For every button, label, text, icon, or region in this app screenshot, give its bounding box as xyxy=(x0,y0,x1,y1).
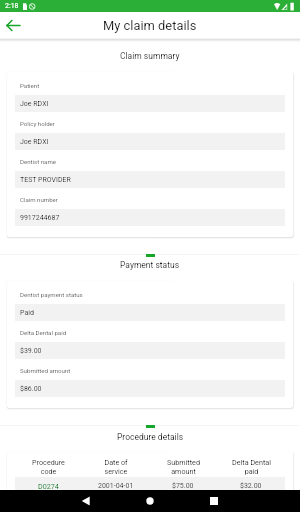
staticText: 9917244687 xyxy=(20,214,60,222)
staticText: $32.00 xyxy=(240,482,262,490)
staticText: My claim details xyxy=(103,18,197,33)
staticText: Submitted amount xyxy=(167,458,200,476)
staticText: D0274 xyxy=(38,482,59,490)
button[interactable]: Back xyxy=(0,12,26,38)
staticText: Submitted amount xyxy=(20,367,71,374)
staticText: Delta Dental paid xyxy=(20,329,67,336)
staticText: Procedure details xyxy=(117,432,184,442)
staticText: Joe RDXI xyxy=(20,138,49,146)
staticText: Dentist name xyxy=(20,158,56,165)
staticText: Date of service xyxy=(104,458,128,476)
staticText: Claim number xyxy=(20,196,58,203)
staticText: Patient xyxy=(20,82,40,89)
staticText: Delta Dental paid xyxy=(232,458,271,476)
staticText: Joe RDXI xyxy=(20,100,49,108)
staticText: $39.00 xyxy=(20,347,42,355)
staticText: TEST PROVIDER xyxy=(20,176,71,184)
staticText: $75.00 xyxy=(172,482,194,490)
staticText: Procedure code xyxy=(32,458,65,476)
staticText: $86.00 xyxy=(20,385,42,393)
staticText: Claim summary xyxy=(120,51,180,61)
staticText: Policy holder xyxy=(20,120,55,127)
staticText: Paid xyxy=(20,309,34,317)
staticText: Payment status xyxy=(120,260,180,270)
staticText: 2001-04-01 xyxy=(98,482,134,490)
staticText: 2:18 xyxy=(5,2,19,10)
staticText: Dentist payment status xyxy=(20,291,83,298)
